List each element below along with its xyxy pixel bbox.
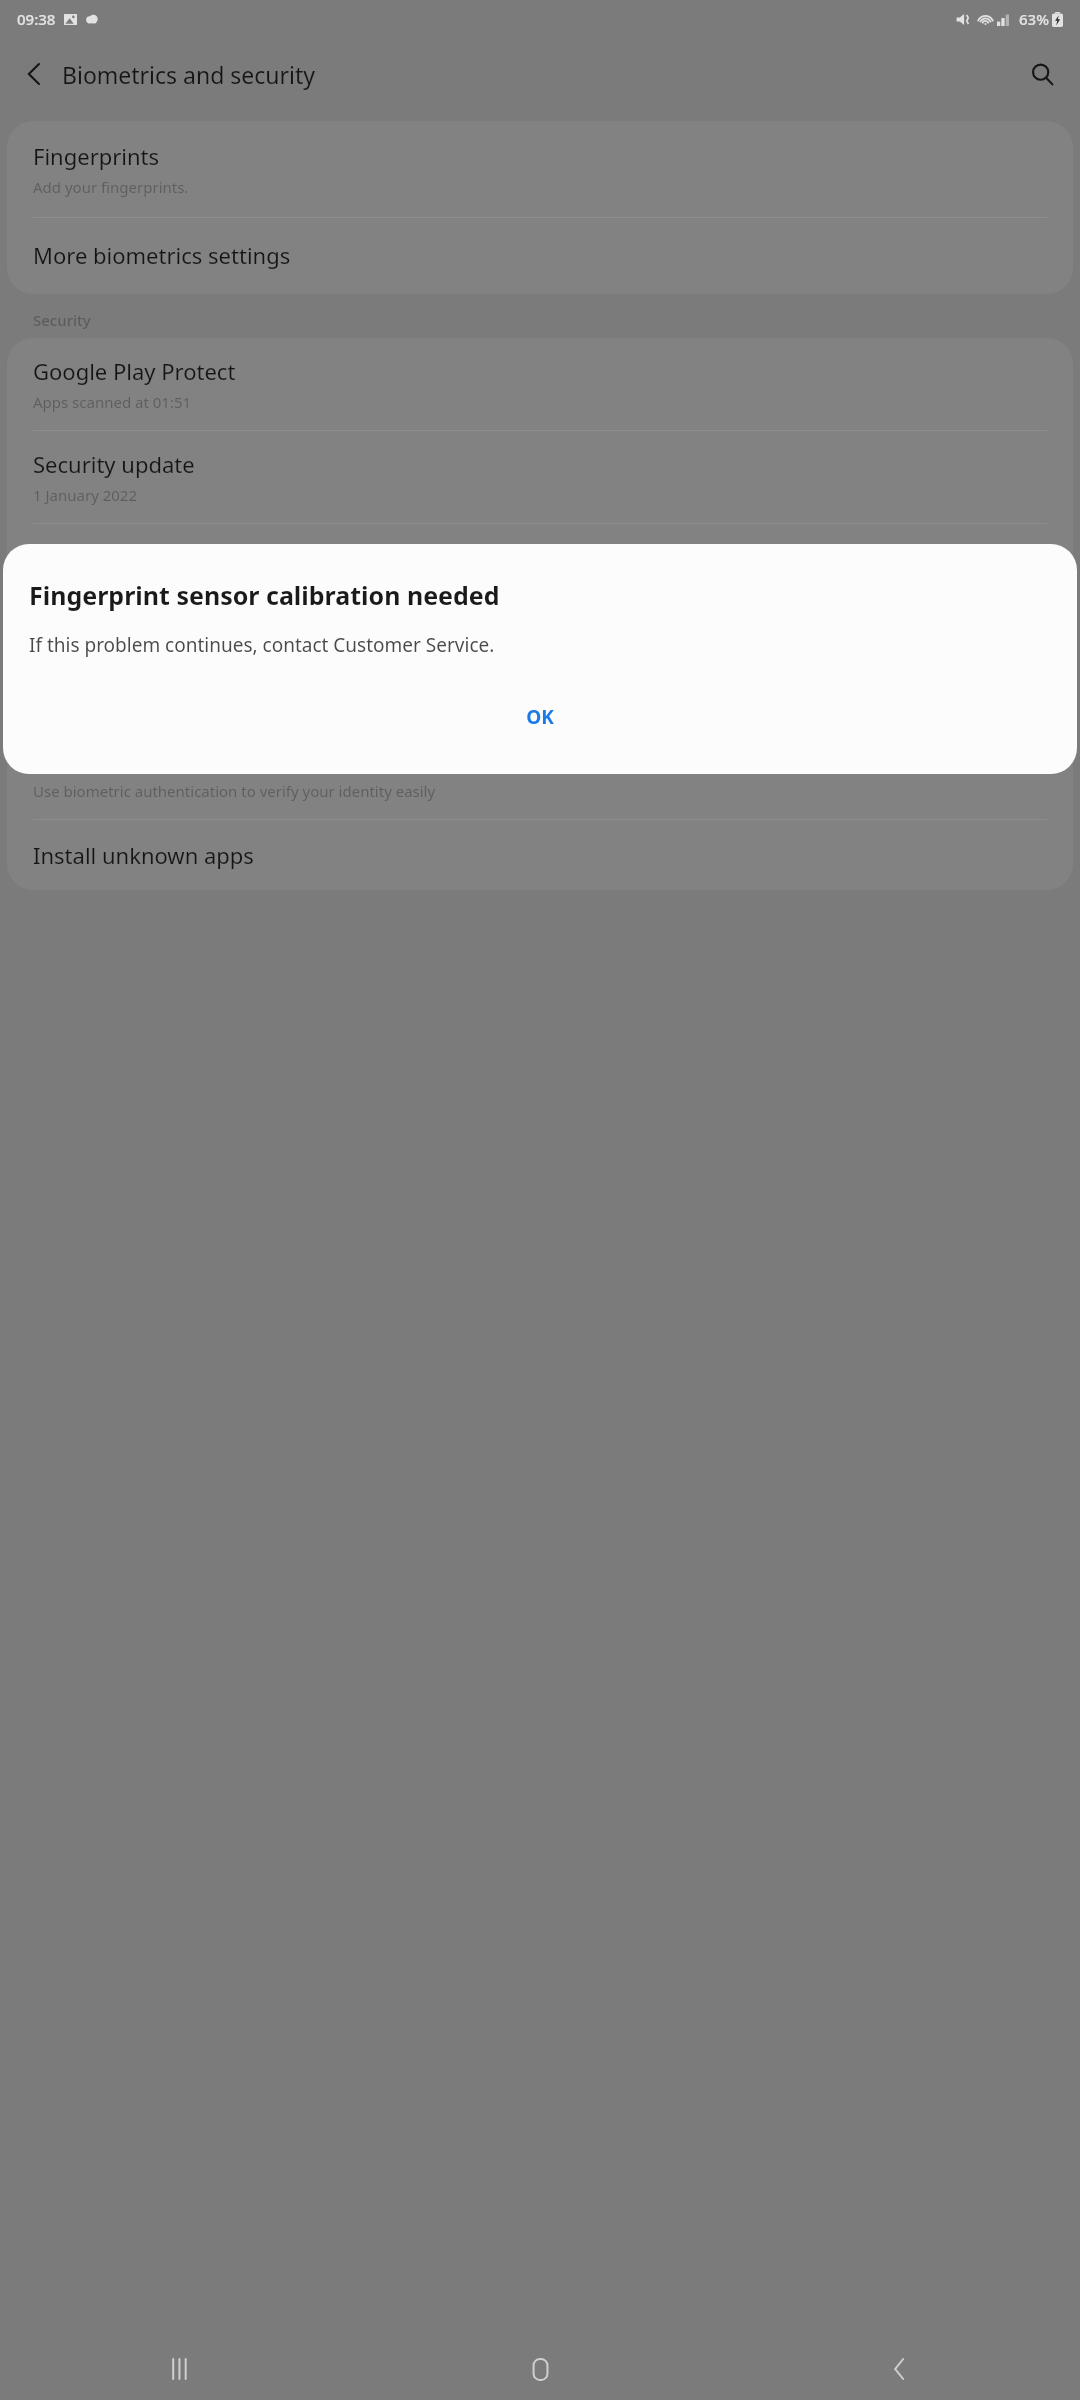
staticText: Install unknown apps (33, 840, 254, 870)
staticText: 1 June 2022 (33, 578, 115, 598)
staticText: Fingerprint sensor calibration needed (29, 578, 500, 612)
staticText: Google Play system update (33, 542, 314, 572)
staticText: Fingerprints (33, 141, 160, 171)
staticText: Add your fingerprints. (33, 177, 189, 197)
staticText: Google Play Protect (33, 356, 236, 386)
button[interactable]: Security update (7, 431, 1073, 523)
staticText: Security (33, 310, 91, 330)
button[interactable]: Search (1016, 48, 1068, 100)
staticText: Biometrics and security (62, 59, 316, 90)
staticText: If this problem continues, contact Custo… (29, 632, 495, 658)
button[interactable]: Recent apps (148, 2338, 212, 2400)
staticText: 63% (1019, 9, 1049, 29)
button[interactable]: Install unknown apps (7, 820, 1073, 890)
button[interactable]: Google Play system update (7, 524, 1073, 618)
button[interactable]: Samsung Pass (7, 727, 1073, 819)
staticText: Samsung Pass (33, 745, 182, 775)
button[interactable]: Back (868, 2338, 932, 2400)
staticText: Apps scanned at 01:51 (33, 392, 192, 412)
button[interactable]: OK (3, 688, 1077, 746)
staticText: Find My Mobile (33, 652, 191, 682)
staticText: Use biometric authentication to verify y… (33, 781, 436, 801)
button[interactable]: Google Play Protect (7, 338, 1073, 430)
staticText: OK (526, 704, 554, 730)
staticText: Security update (33, 449, 195, 479)
staticText: More biometrics settings (33, 240, 291, 270)
staticText: 1 January 2022 (33, 485, 138, 505)
button[interactable]: Home (508, 2338, 572, 2400)
button[interactable]: Fingerprints (7, 121, 1073, 217)
button[interactable]: Back (8, 47, 62, 101)
button[interactable]: More biometrics settings (7, 218, 1073, 294)
staticText: 09:38 (17, 9, 56, 29)
button[interactable]: Find My Mobile (7, 634, 1073, 726)
